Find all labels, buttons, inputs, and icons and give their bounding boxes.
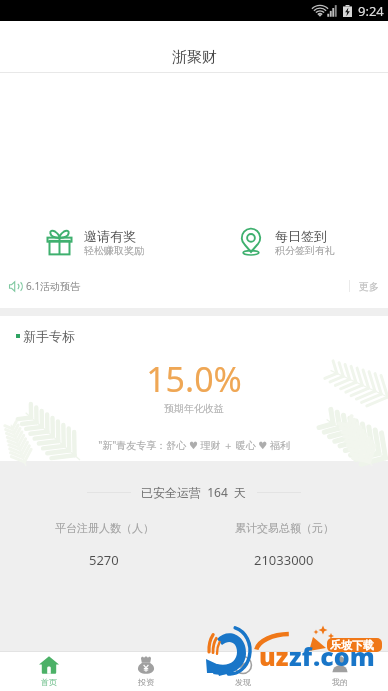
staticText: 预期年化收益 [0, 402, 388, 415]
staticText: 我的 [332, 677, 348, 687]
staticText: 平台注册人数（人） [55, 521, 154, 535]
staticText: 每日签到 [275, 228, 327, 244]
staticText: 发现 [235, 677, 251, 687]
staticText: 5270 [89, 551, 119, 569]
staticText: uz [259, 639, 289, 673]
staticText: 投资 [138, 677, 154, 687]
staticText: 6.1活动预告 [26, 279, 81, 293]
button[interactable]: 发现 [194, 651, 291, 691]
staticText: 更多 [359, 280, 379, 293]
button[interactable]: 邀请有奖 [0, 213, 194, 275]
staticText: 15.0% [0, 356, 388, 402]
button[interactable]: 投资 [97, 651, 194, 691]
staticText: 邀请有奖 [84, 228, 136, 244]
button[interactable]: 我的 [291, 651, 388, 691]
staticText: 轻松赚取奖励 [84, 244, 144, 257]
staticText: 累计交易总额（元） [235, 521, 334, 535]
button[interactable]: 首页 [0, 651, 97, 691]
staticText: 21033000 [254, 551, 314, 569]
staticText: 乐坡下载 [330, 638, 374, 652]
staticText: zf [289, 639, 313, 673]
staticText: 积分签到有礼 [275, 244, 335, 257]
button[interactable]: 每日签到 [194, 213, 388, 275]
staticText: 已安全运营 164 天 [141, 484, 247, 500]
staticText: 首页 [41, 677, 57, 687]
button[interactable]: 更多 [350, 275, 388, 297]
staticText: 新手专标 [23, 328, 75, 344]
staticText: .com [313, 639, 375, 673]
staticText: 9:24 [358, 2, 384, 20]
staticText: 浙聚财 [172, 48, 217, 67]
staticText: "新"青友专享：舒心 ♥ 理财 ＋ 暖心 ♥ 福利 [0, 438, 388, 452]
